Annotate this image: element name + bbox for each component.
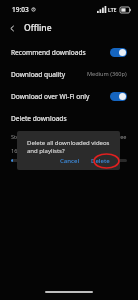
staticText: Download over Wi-Fi only	[11, 92, 110, 101]
button[interactable]: Back	[4, 20, 20, 36]
staticText: Delete	[91, 157, 110, 164]
button[interactable]: Download over Wi-Fi only	[0, 85, 138, 107]
button[interactable]: Download quality	[0, 63, 138, 85]
staticText: Storage	[11, 133, 87, 141]
button[interactable]: Delete	[87, 155, 114, 166]
staticText: 19:03	[12, 5, 29, 14]
staticText: 163.2 MB used	[11, 147, 50, 155]
staticText: Medium (360p)	[87, 70, 127, 78]
staticText: Delete all downloaded videos and playlis…	[27, 139, 110, 155]
staticText: Cancel	[60, 157, 80, 164]
staticText: 104.38 GB Free	[87, 133, 127, 141]
button[interactable]: Cancel	[56, 155, 84, 166]
button[interactable]: Delete downloads	[0, 107, 138, 129]
staticText: Recommend downloads	[11, 48, 110, 57]
button[interactable]: Recommend downloads	[0, 41, 138, 63]
staticText: Download quality	[11, 70, 87, 79]
staticText: Delete downloads	[11, 114, 67, 123]
staticText: LTE	[108, 6, 117, 13]
staticText: Offline	[24, 22, 52, 34]
